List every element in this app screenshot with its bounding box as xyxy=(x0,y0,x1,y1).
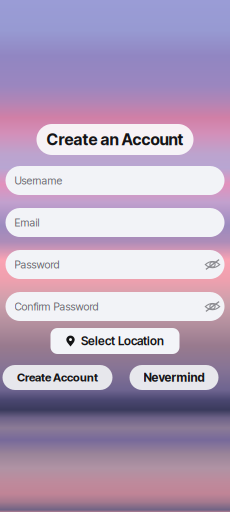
button[interactable]: Show Confirm Password xyxy=(198,292,224,321)
staticText: Select Location xyxy=(81,334,164,348)
staticText: Username xyxy=(14,174,62,187)
button[interactable]: Select Location xyxy=(50,328,179,354)
staticText: Confirm Password xyxy=(14,300,98,313)
staticText: Email xyxy=(14,216,39,229)
staticText: Create an Account xyxy=(46,130,183,149)
staticText: Nevermind xyxy=(143,370,204,385)
staticText: Password xyxy=(14,258,59,271)
button[interactable]: Nevermind xyxy=(129,365,218,390)
staticText: Create Account xyxy=(17,371,98,384)
button[interactable]: Show Password xyxy=(198,250,224,279)
button[interactable]: Create Account xyxy=(2,365,112,390)
